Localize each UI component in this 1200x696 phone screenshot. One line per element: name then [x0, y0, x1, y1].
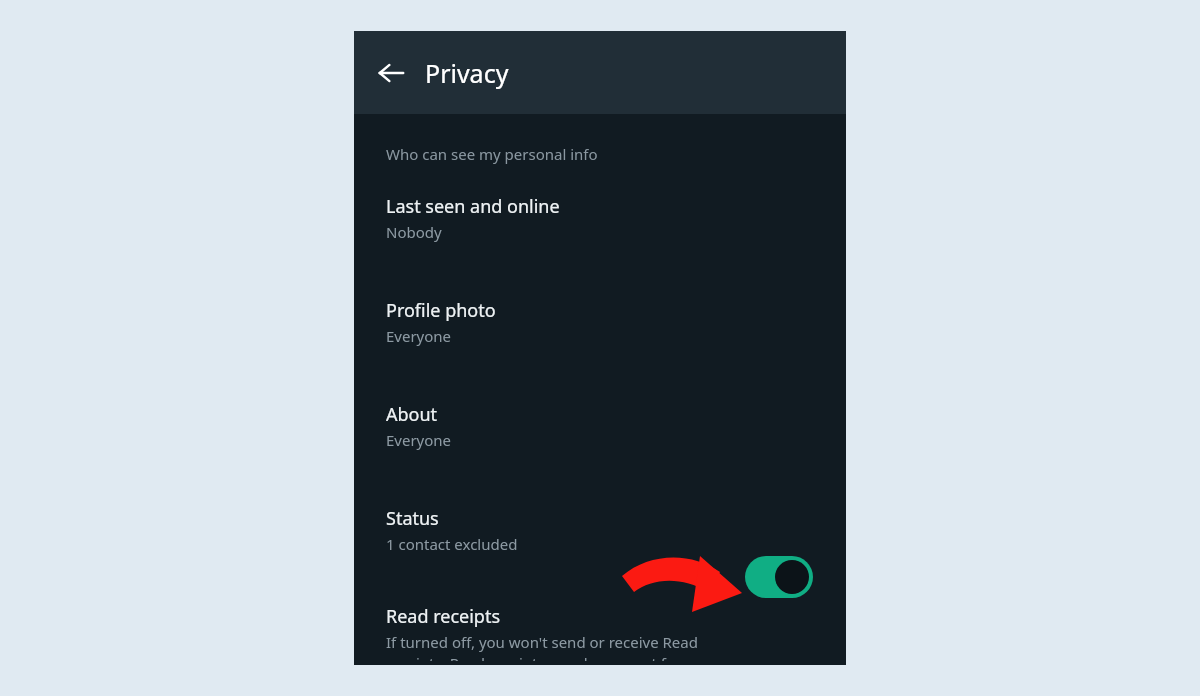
staticText: If turned off, you won't send or receive…: [386, 632, 726, 661]
staticText: 1 contact excluded: [386, 534, 518, 554]
button[interactable]: Profile photo: [354, 292, 846, 352]
button[interactable]: Back: [369, 51, 413, 95]
staticText: Read receipts: [386, 604, 501, 629]
staticText: Last seen and online: [386, 194, 560, 219]
staticText: Everyone: [386, 326, 452, 346]
staticText: Everyone: [386, 430, 452, 450]
staticText: Privacy: [425, 56, 509, 90]
staticText: Nobody: [386, 222, 442, 242]
button[interactable]: Last seen and online: [354, 188, 846, 248]
button[interactable]: About: [354, 396, 846, 456]
button[interactable]: Read receipts: [354, 600, 846, 665]
staticText: Who can see my personal info: [386, 144, 598, 164]
staticText: Profile photo: [386, 298, 496, 323]
button[interactable]: Status: [354, 500, 846, 560]
button[interactable]: Read receipts toggle: [745, 556, 813, 598]
staticText: About: [386, 402, 438, 427]
staticText: Status: [386, 506, 439, 531]
